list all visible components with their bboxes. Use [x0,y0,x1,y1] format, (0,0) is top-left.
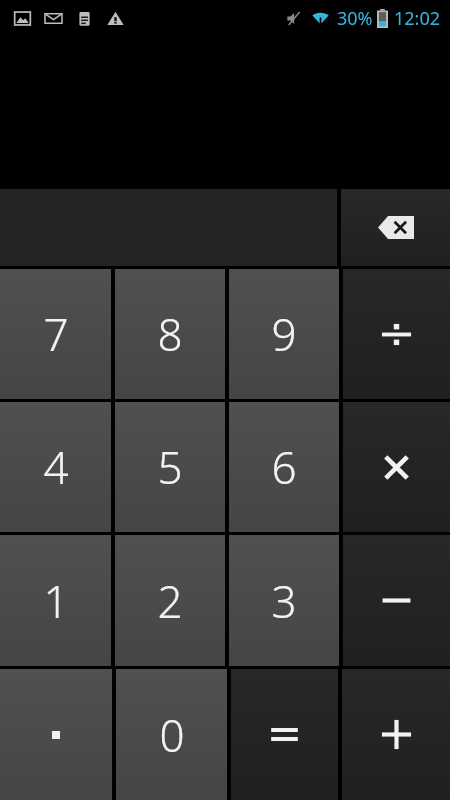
staticText: 5 [157,437,183,497]
button[interactable]: Multiply [343,402,450,532]
button[interactable]: 1 [0,535,111,666]
button[interactable]: Delete [341,189,450,266]
staticText: 8 [157,304,183,364]
button[interactable]: 5 [115,402,225,532]
staticText: 9 [271,304,297,364]
button[interactable]: Equals [231,669,338,800]
button[interactable] [0,669,112,800]
button[interactable]: Minus [343,535,450,666]
button[interactable]: Plus [342,669,450,800]
staticText: 6 [271,437,297,497]
staticText: 4 [43,437,69,497]
button[interactable]: 8 [115,269,225,399]
staticText: 2 [157,571,183,631]
button[interactable]: 3 [229,535,339,666]
button[interactable]: 0 [116,669,227,800]
staticText: 1 [43,571,69,631]
button[interactable]: 7 [0,269,111,399]
button[interactable]: Divide [343,269,450,399]
staticText: 7 [43,304,69,364]
button[interactable]: 9 [229,269,339,399]
staticText: 30% [337,6,373,31]
staticText: 0 [159,705,185,765]
staticText: 3 [271,571,297,631]
button[interactable]: 6 [229,402,339,532]
staticText: 12:02 [394,6,441,31]
button[interactable]: 4 [0,402,111,532]
button[interactable]: 2 [115,535,225,666]
